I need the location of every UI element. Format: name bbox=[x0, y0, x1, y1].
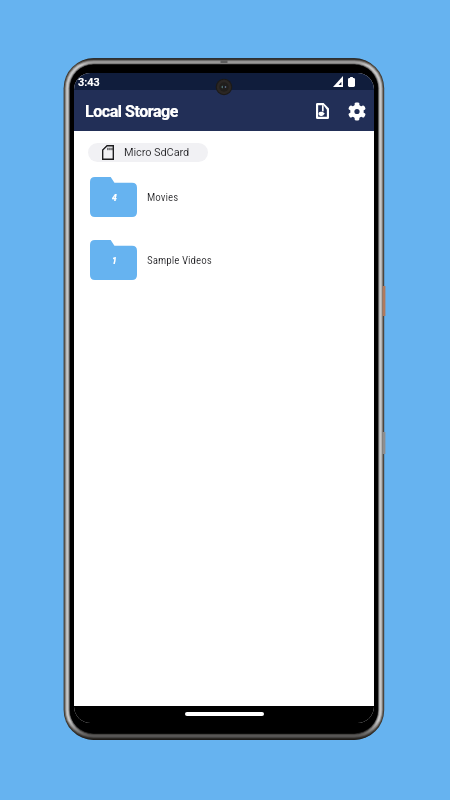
staticText: Movies bbox=[147, 191, 179, 204]
button[interactable]: Settings bbox=[339, 93, 374, 129]
staticText: 4 bbox=[112, 193, 117, 203]
button[interactable]: 4 bbox=[90, 177, 179, 217]
button[interactable]: Micro SdCard bbox=[88, 143, 208, 162]
button[interactable]: 1 bbox=[90, 240, 212, 280]
staticText: Local Storage bbox=[85, 102, 178, 121]
staticText: Sample Videos bbox=[147, 254, 212, 267]
staticText: 3:43 bbox=[78, 76, 100, 89]
staticText: 1 bbox=[112, 256, 117, 266]
staticText: Micro SdCard bbox=[124, 146, 190, 159]
button[interactable]: Storage analysis bbox=[304, 93, 340, 129]
